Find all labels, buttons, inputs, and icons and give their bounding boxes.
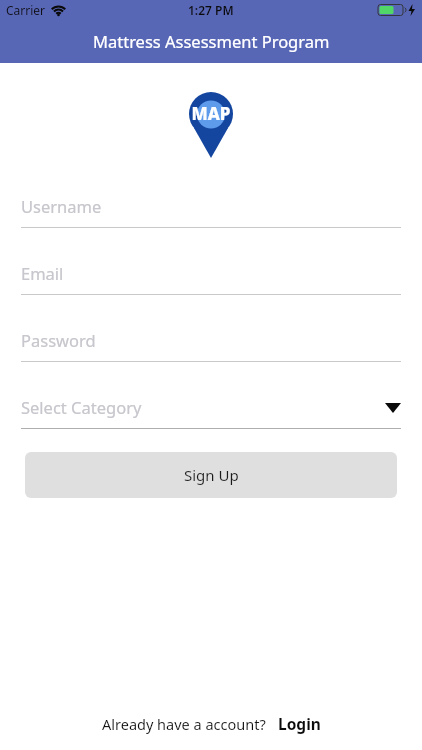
staticText: Password bbox=[21, 329, 96, 351]
button[interactable]: Sign Up bbox=[25, 452, 397, 498]
staticText: Carrier bbox=[6, 2, 46, 18]
staticText: MAP bbox=[171, 102, 251, 125]
button[interactable]: Login bbox=[278, 713, 321, 734]
staticText: Username bbox=[21, 195, 102, 217]
staticText: 1:27 PM bbox=[188, 2, 234, 18]
staticText: Select Category bbox=[21, 396, 142, 418]
staticText: Already have a account? bbox=[102, 714, 266, 734]
staticText: Login bbox=[278, 713, 321, 734]
staticText: Email bbox=[21, 262, 64, 284]
staticText: Mattress Assessment Program bbox=[93, 30, 330, 52]
staticText: Sign Up bbox=[184, 465, 239, 485]
